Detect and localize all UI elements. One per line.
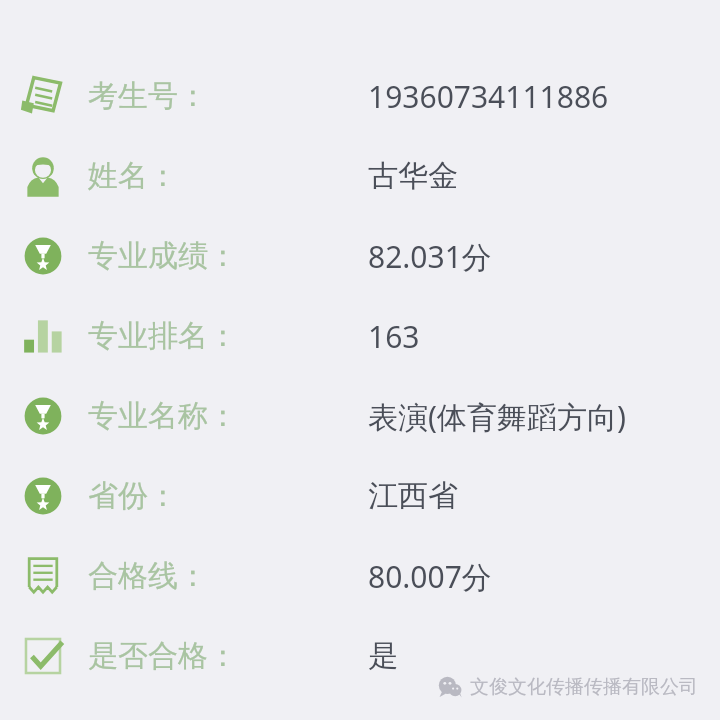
button[interactable]: 专业名称： bbox=[0, 376, 720, 456]
button[interactable]: 考生号： bbox=[0, 56, 720, 136]
staticText: 80.007分 bbox=[368, 556, 492, 597]
staticText: 专业成绩： bbox=[88, 237, 238, 275]
staticText: 江西省 bbox=[368, 477, 458, 515]
other: 专业名称： bbox=[20, 393, 66, 439]
button[interactable]: 姓名： bbox=[0, 136, 720, 216]
staticText: 表演(体育舞蹈方向) bbox=[368, 396, 626, 437]
staticText: 姓名： bbox=[88, 157, 178, 195]
staticText: 文俊文化传播传播有限公司 bbox=[470, 675, 698, 699]
staticText: 合格线： bbox=[88, 557, 208, 595]
staticText: 古华金 bbox=[368, 157, 458, 195]
button[interactable]: 省份： bbox=[0, 456, 720, 536]
other: 专业成绩： bbox=[20, 233, 66, 279]
staticText: 专业排名： bbox=[88, 317, 238, 355]
staticText: 考生号： bbox=[88, 77, 208, 115]
button[interactable]: WeChat official account bbox=[437, 674, 698, 700]
staticText: 专业名称： bbox=[88, 397, 238, 435]
other: 是否合格： bbox=[20, 633, 66, 679]
staticText: 省份： bbox=[88, 477, 178, 515]
other: 省份： bbox=[20, 473, 66, 519]
other: WeChat official account bbox=[437, 674, 463, 700]
staticText: 163 bbox=[368, 316, 420, 357]
button[interactable]: 合格线： bbox=[0, 536, 720, 616]
staticText: 是 bbox=[368, 637, 398, 675]
other: 合格线： bbox=[20, 553, 66, 599]
other: 考生号： bbox=[20, 73, 66, 119]
staticText: 是否合格： bbox=[88, 637, 238, 675]
button[interactable]: 是否合格： bbox=[0, 616, 720, 696]
button[interactable]: 专业成绩： bbox=[0, 216, 720, 296]
other: 姓名： bbox=[20, 153, 66, 199]
button[interactable]: 专业排名： bbox=[0, 296, 720, 376]
staticText: 19360734111886 bbox=[368, 76, 609, 117]
staticText: 82.031分 bbox=[368, 236, 492, 277]
other: 专业排名： bbox=[20, 313, 66, 359]
